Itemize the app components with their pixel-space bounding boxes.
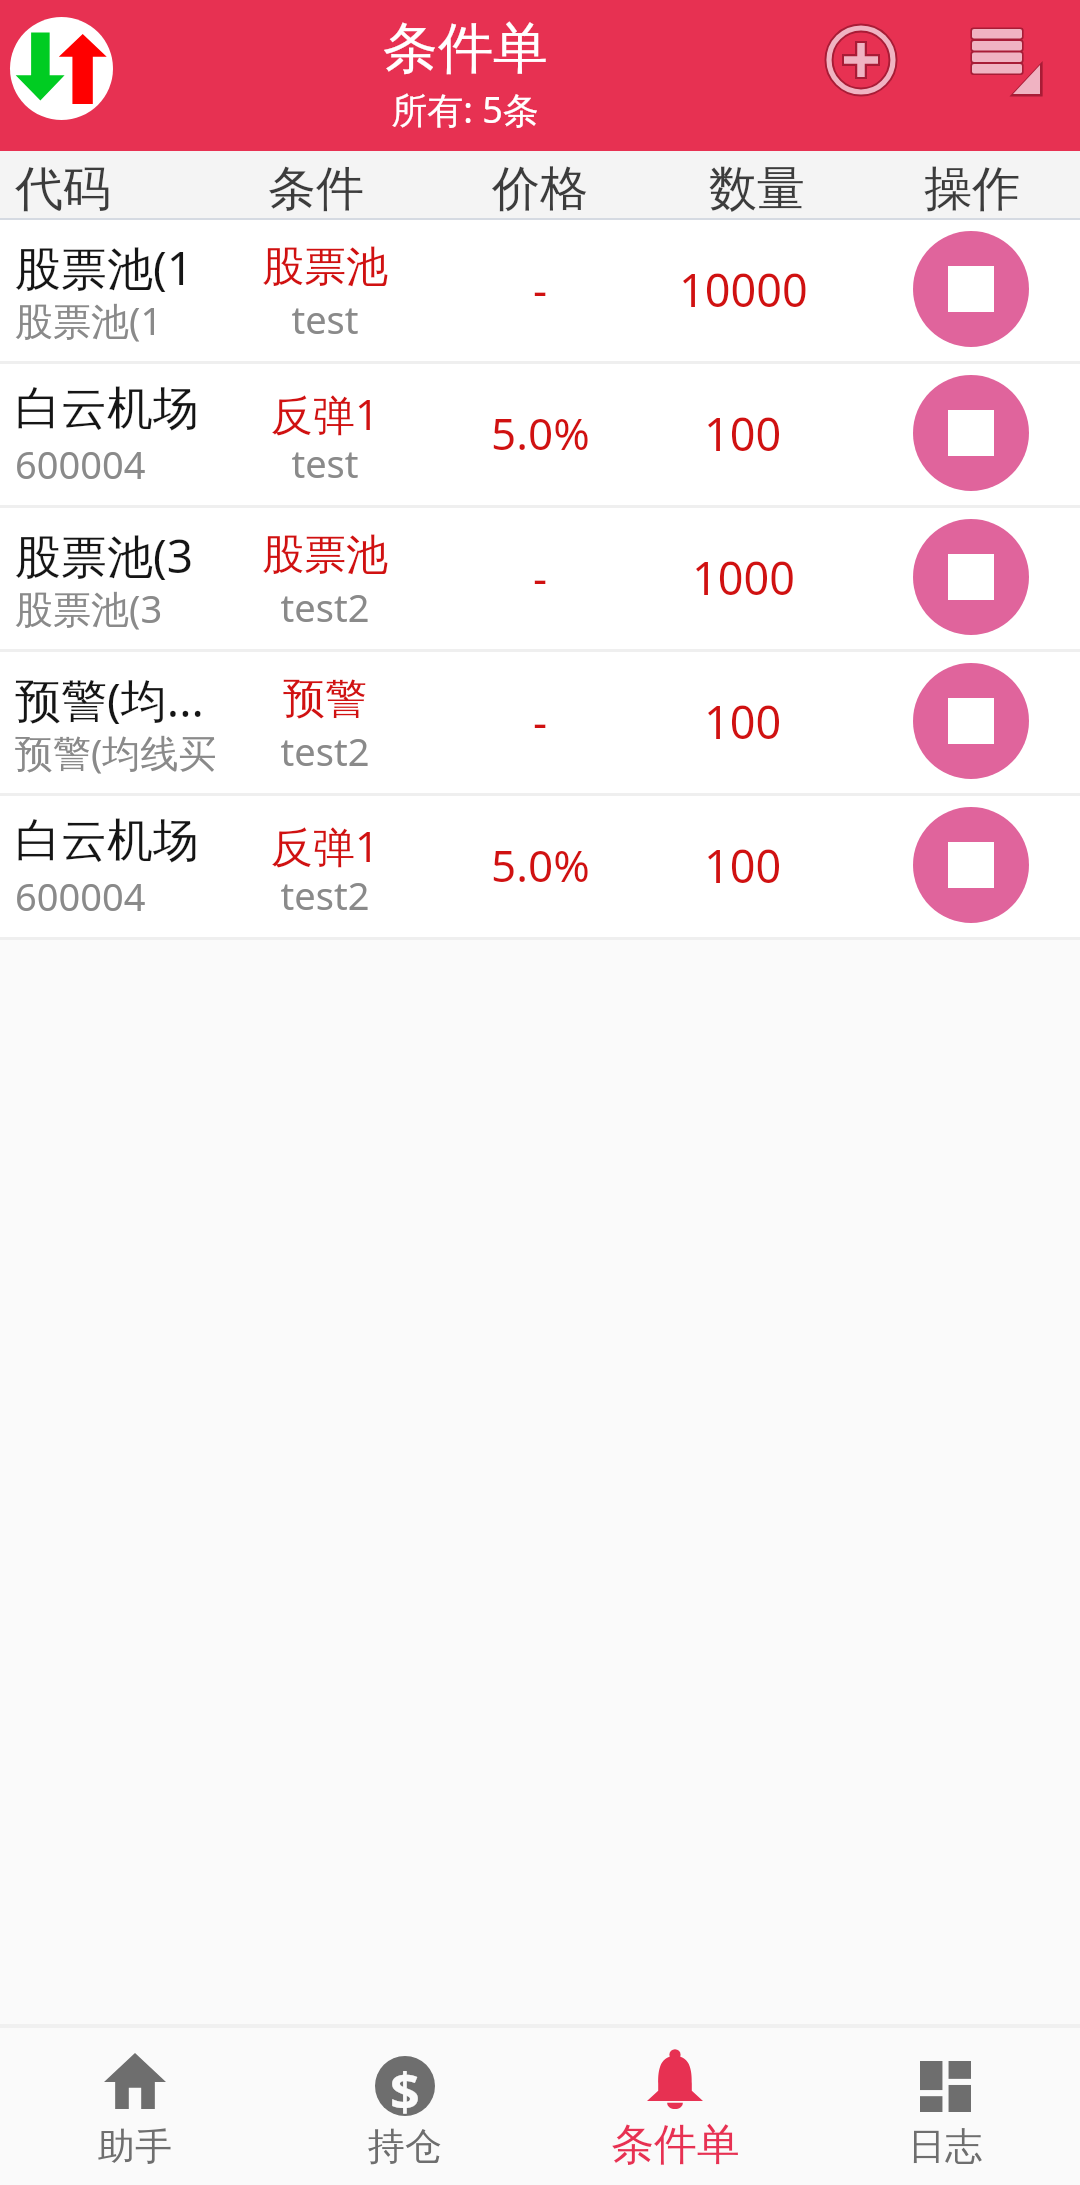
button[interactable]: 白云机场 — [0, 796, 1080, 940]
staticText: 5.0% — [491, 835, 590, 895]
staticText: 600004 — [15, 870, 146, 922]
button[interactable]: 白云机场 — [0, 364, 1080, 508]
button[interactable]: 条件单 — [540, 2028, 810, 2185]
staticText: 预警(均... — [15, 668, 204, 731]
staticText: 股票池(1 — [15, 236, 194, 299]
staticText: 预警 — [245, 673, 405, 726]
staticText: 股票池(3 — [15, 524, 194, 587]
staticText: $ — [390, 2055, 420, 2115]
staticText: 股票池(3 — [15, 582, 163, 634]
staticText: 5.0% — [491, 403, 590, 463]
button[interactable]: 预警(均... — [0, 652, 1080, 796]
button[interactable]: 日志 — [810, 2028, 1080, 2185]
button[interactable]: Stop order — [913, 807, 1029, 923]
button[interactable]: Stop order — [913, 231, 1029, 347]
staticText: test — [245, 293, 405, 345]
staticText: 反弹1 — [245, 817, 405, 874]
staticText: test2 — [245, 725, 405, 777]
staticText: 代码 — [15, 159, 111, 219]
staticText: 数量 — [709, 159, 805, 219]
button[interactable]: App logo — [10, 17, 113, 120]
staticText: 1000 — [692, 547, 795, 608]
staticText: - — [533, 547, 548, 607]
button[interactable]: 股票池(1 — [0, 220, 1080, 364]
button[interactable]: Add — [811, 10, 911, 110]
staticText: test — [245, 437, 405, 489]
staticText: 预警(均线买 — [15, 726, 217, 778]
staticText: 股票池 — [245, 241, 405, 294]
staticText: 操作 — [924, 159, 1020, 219]
staticText: - — [533, 691, 548, 751]
staticText: 反弹1 — [245, 385, 405, 442]
button[interactable]: Sort — [952, 10, 1052, 110]
staticText: 100 — [704, 691, 782, 752]
button[interactable]: Stop order — [913, 663, 1029, 779]
staticText: 条件单 — [383, 14, 548, 83]
staticText: 100 — [704, 403, 782, 464]
button[interactable]: Stop order — [913, 375, 1029, 491]
staticText: 所有: 5条 — [391, 85, 539, 134]
staticText: 价格 — [492, 159, 588, 219]
staticText: 股票池 — [245, 529, 405, 582]
button[interactable]: 股票池(3 — [0, 508, 1080, 652]
staticText: 条件 — [268, 159, 364, 219]
staticText: 条件单 — [611, 2118, 740, 2172]
staticText: 日志 — [908, 2123, 982, 2170]
staticText: - — [533, 259, 548, 319]
staticText: 股票池(1 — [15, 294, 163, 346]
staticText: test2 — [245, 869, 405, 921]
button[interactable]: 助手 — [0, 2028, 270, 2185]
button[interactable]: Stop order — [913, 519, 1029, 635]
staticText: 白云机场 — [15, 812, 199, 870]
staticText: 持仓 — [368, 2123, 442, 2170]
staticText: test2 — [245, 581, 405, 633]
staticText: 白云机场 — [15, 380, 199, 438]
staticText: 100 — [704, 835, 782, 896]
button[interactable]: $ — [270, 2028, 540, 2185]
staticText: 助手 — [98, 2123, 172, 2170]
staticText: 10000 — [679, 259, 808, 320]
staticText: 600004 — [15, 438, 146, 490]
